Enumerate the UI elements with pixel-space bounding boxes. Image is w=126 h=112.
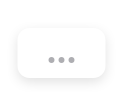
button[interactable]: More options: [17, 28, 105, 78]
